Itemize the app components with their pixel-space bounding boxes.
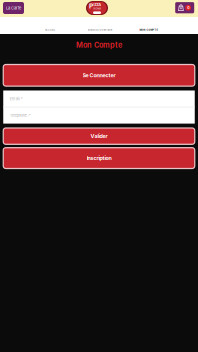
staticText: IZZA xyxy=(93,3,101,7)
staticText: 0 xyxy=(187,6,189,10)
staticText: Telephone :* xyxy=(10,113,31,118)
button[interactable]: Panier xyxy=(175,2,194,13)
button[interactable]: MON COMPTE xyxy=(131,26,165,34)
staticText: ACCUEIL xyxy=(45,29,55,31)
button[interactable]: Inscription xyxy=(3,148,195,168)
staticText: Se Connecter xyxy=(82,72,115,79)
staticText: Mon Compte xyxy=(76,41,122,49)
button[interactable]: ZONES DE LIVRAISON xyxy=(68,26,131,34)
staticText: MON COMPTE xyxy=(139,28,157,31)
staticText: ROMA xyxy=(93,7,101,10)
staticText: P xyxy=(89,2,93,10)
staticText: Valider xyxy=(90,133,107,139)
staticText: Email * xyxy=(10,96,23,101)
staticText: Inscription xyxy=(86,155,111,161)
staticText: ZONES DE LIVRAISON xyxy=(87,29,112,31)
button[interactable]: La Carte xyxy=(3,2,24,14)
button[interactable]: Valider xyxy=(3,128,195,144)
button[interactable]: ACCUEIL xyxy=(31,26,68,34)
button[interactable]: Se Connecter xyxy=(3,64,195,86)
staticText: La Carte xyxy=(6,6,21,10)
